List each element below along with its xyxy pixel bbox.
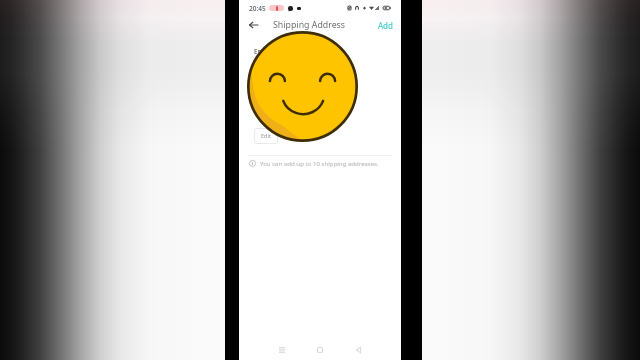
staticText: Shipping Address [273, 19, 346, 31]
staticText: Edit [261, 132, 272, 140]
staticText: 1234 Market Street, Apt 5B [254, 61, 330, 69]
staticText: 20:45 [249, 4, 266, 13]
staticText: Add [378, 20, 393, 31]
button[interactable]: Edit [254, 128, 278, 144]
button[interactable]: Add [377, 18, 394, 33]
button[interactable]: Emma Johnson [239, 34, 401, 144]
staticText: You can add up to 10 shipping addresses. [260, 159, 379, 167]
staticText: Suite 200, Mission District [254, 73, 327, 81]
staticText: Emma Johnson [254, 47, 299, 55]
staticText: +1 415 555 0123 [254, 109, 300, 117]
button[interactable]: Back [349, 335, 367, 360]
staticText: United States [254, 97, 292, 105]
button[interactable]: Back [249, 18, 263, 32]
button[interactable]: Recent apps [273, 335, 291, 360]
button[interactable]: Home [311, 335, 329, 360]
